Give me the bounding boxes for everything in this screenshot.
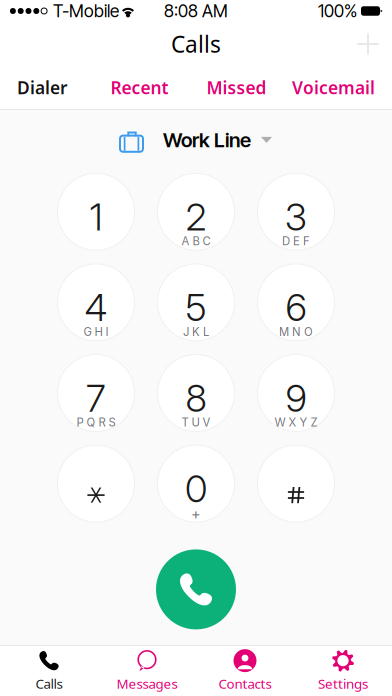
staticText: T U V <box>181 415 210 429</box>
button[interactable]: 8 <box>146 359 246 450</box>
staticText: Settings <box>318 675 368 692</box>
staticText: A B C <box>181 234 210 248</box>
button[interactable]: 0 <box>146 450 246 540</box>
button[interactable]: 9 <box>246 359 346 450</box>
staticText: 0 <box>185 466 207 511</box>
button[interactable]: 6 <box>246 269 346 359</box>
button[interactable]: Recent <box>91 66 188 109</box>
staticText: 2 <box>185 194 206 239</box>
staticText: 8 <box>185 375 206 421</box>
staticText: W X Y Z <box>274 415 317 429</box>
staticText: T-Mobile <box>53 0 119 21</box>
staticText: Missed <box>206 76 266 99</box>
button[interactable]: 7 <box>46 359 146 450</box>
staticText: Voicemail <box>292 76 375 99</box>
staticText: Work Line <box>163 128 251 152</box>
staticText: 7 <box>86 375 106 421</box>
staticText: Messages <box>116 675 177 692</box>
staticText: M N O <box>279 325 313 339</box>
button[interactable]: Missed <box>188 66 285 109</box>
staticText: J K L <box>183 325 209 339</box>
staticText: D E F <box>282 234 310 248</box>
staticText: 5 <box>185 285 206 330</box>
button[interactable]: 5 <box>146 269 246 359</box>
staticText: + <box>191 505 201 523</box>
button[interactable]: 1 <box>46 178 146 269</box>
button[interactable]: Contacts <box>196 645 294 695</box>
button[interactable]: Dialer <box>0 66 91 109</box>
button[interactable]: 3 <box>246 178 346 269</box>
staticText: Calls <box>35 675 62 692</box>
button[interactable]: Work Line <box>120 109 272 171</box>
button[interactable]: Add <box>344 26 392 62</box>
button[interactable]: Messages <box>98 645 196 695</box>
staticText: 6 <box>285 285 306 330</box>
button[interactable] <box>46 450 146 540</box>
staticText: Contacts <box>218 675 271 692</box>
button[interactable]: 2 <box>146 178 246 269</box>
staticText: Recent <box>110 76 168 99</box>
staticText: Calls <box>171 29 221 59</box>
staticText: P Q R S <box>76 415 115 429</box>
button[interactable]: Voicemail <box>285 66 382 109</box>
button[interactable]: 4 <box>46 269 146 359</box>
button[interactable]: Settings <box>294 645 392 695</box>
staticText: 1 <box>89 194 102 239</box>
staticText: 3 <box>285 194 307 239</box>
button[interactable] <box>246 450 346 540</box>
staticText: Dialer <box>17 76 68 99</box>
staticText: 4 <box>84 285 107 330</box>
staticText: 8:08 AM <box>164 0 228 21</box>
staticText: 9 <box>285 375 306 421</box>
staticText: G H I <box>83 325 108 339</box>
staticText: 100% <box>318 0 357 21</box>
button[interactable]: Call <box>156 549 236 629</box>
button[interactable]: Calls <box>0 645 98 695</box>
